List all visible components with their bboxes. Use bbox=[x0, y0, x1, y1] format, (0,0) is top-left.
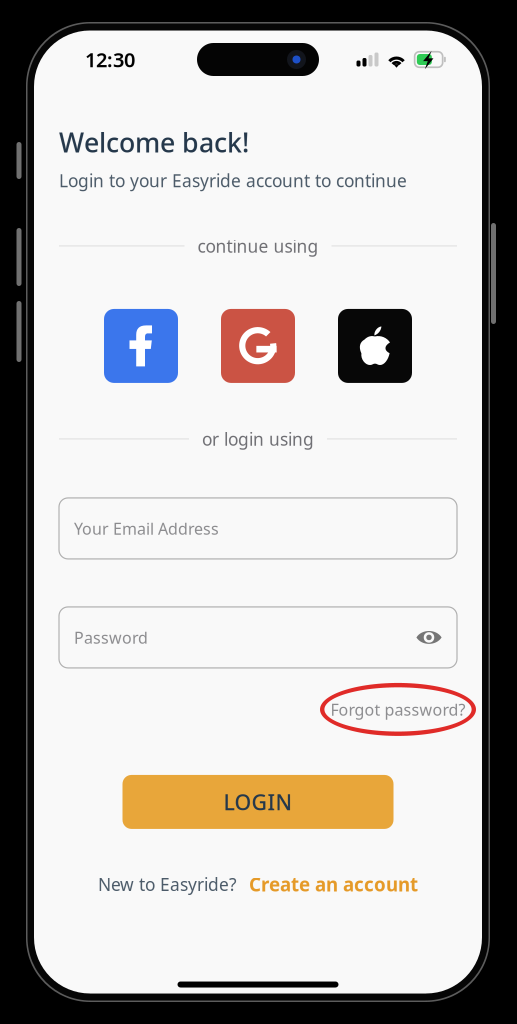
button[interactable]: Create an account bbox=[249, 872, 418, 897]
button[interactable]: LOGIN bbox=[122, 775, 393, 829]
button[interactable]: Forgot password? bbox=[320, 683, 476, 736]
staticText: Create an account bbox=[249, 872, 418, 897]
staticText: Login to your Easyride account to contin… bbox=[59, 169, 407, 192]
staticText: Welcome back! bbox=[59, 124, 249, 160]
staticText: 12:30 bbox=[85, 46, 135, 73]
staticText: or login using bbox=[202, 427, 314, 450]
staticText: Forgot password? bbox=[330, 699, 465, 720]
button[interactable]: Continue with Google bbox=[221, 309, 295, 383]
button[interactable]: Show password bbox=[416, 629, 442, 645]
staticText: New to Easyride? bbox=[98, 873, 237, 896]
button[interactable]: Continue with Facebook bbox=[104, 309, 178, 383]
button[interactable]: Continue with Apple bbox=[338, 309, 412, 383]
staticText: Password bbox=[74, 627, 148, 648]
staticText: LOGIN bbox=[223, 788, 292, 816]
staticText: continue using bbox=[197, 234, 318, 257]
staticText: Your Email Address bbox=[74, 518, 219, 539]
